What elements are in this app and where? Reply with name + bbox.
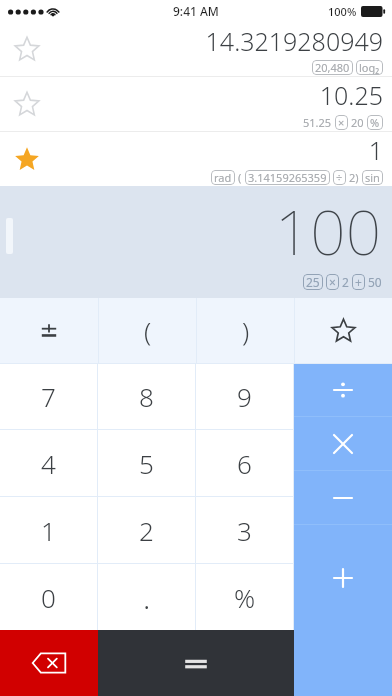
button[interactable]: 7: [0, 364, 97, 429]
staticText: 14.3219280949: [205, 24, 383, 58]
button[interactable]: Favorite: [10, 87, 44, 121]
staticText: 4: [41, 446, 56, 481]
button[interactable]: %: [196, 564, 293, 630]
staticText: ÷: [336, 170, 343, 185]
button[interactable]: 3: [196, 497, 293, 563]
button[interactable]: Favorite: [0, 22, 392, 76]
staticText: ): [242, 313, 250, 348]
staticText: 51.25: [303, 115, 332, 130]
button[interactable]: Divide: [294, 364, 392, 416]
staticText: 9:41 AM: [173, 3, 219, 19]
button[interactable]: [0, 298, 98, 363]
staticText: 3.14159265359: [248, 170, 327, 185]
staticText: 25: [306, 274, 320, 290]
staticText: ×: [329, 274, 336, 290]
button[interactable]: Favorites: [295, 298, 392, 363]
button[interactable]: 1: [0, 497, 97, 563]
button[interactable]: 0: [0, 564, 97, 630]
staticText: 9: [237, 379, 252, 414]
button[interactable]: Backspace: [0, 630, 98, 696]
button[interactable]: Unfavorite: [10, 142, 44, 176]
staticText: 10.25: [319, 78, 383, 112]
button[interactable]: 6: [196, 430, 293, 496]
button[interactable]: 5: [98, 430, 195, 496]
button[interactable]: Equals: [98, 630, 294, 696]
button[interactable]: (: [99, 298, 196, 363]
staticText: .: [143, 577, 151, 618]
button[interactable]: 2: [98, 497, 195, 563]
button[interactable]: 8: [98, 364, 195, 429]
staticText: (: [144, 313, 152, 348]
staticText: 6: [237, 446, 252, 481]
staticText: log₂: [359, 60, 380, 75]
button[interactable]: 4: [0, 430, 97, 496]
staticText: 7: [41, 379, 56, 414]
staticText: %: [370, 115, 380, 130]
button[interactable]: Add: [294, 525, 392, 630]
staticText: 2: [139, 513, 154, 548]
button[interactable]: Favorite: [10, 32, 44, 66]
staticText: 20,480: [315, 60, 350, 75]
staticText: +: [355, 274, 362, 290]
staticText: 20: [351, 115, 364, 130]
staticText: 0: [41, 580, 56, 615]
button[interactable]: Favorite: [0, 77, 392, 131]
button[interactable]: ): [197, 298, 294, 363]
staticText: 2): [349, 170, 359, 185]
staticText: 2: [342, 274, 349, 290]
staticText: 1: [41, 513, 56, 548]
button[interactable]: Subtract: [294, 471, 392, 524]
staticText: (: [238, 170, 242, 185]
staticText: 3: [237, 513, 252, 548]
staticText: %: [234, 580, 256, 615]
button[interactable]: Multiply: [294, 417, 392, 470]
button[interactable]: 100: [0, 186, 392, 298]
staticText: 50: [368, 274, 382, 290]
staticText: 5: [139, 446, 154, 481]
staticText: 1: [368, 133, 383, 167]
staticText: ×: [338, 115, 345, 130]
button[interactable]: 9: [196, 364, 293, 429]
staticText: 100: [275, 189, 382, 273]
staticText: rad: [214, 170, 232, 185]
button[interactable]: .: [98, 564, 195, 630]
staticText: 100%: [328, 4, 357, 19]
staticText: sin: [365, 170, 380, 185]
staticText: 8: [139, 379, 154, 414]
button[interactable]: Unfavorite: [0, 132, 392, 186]
